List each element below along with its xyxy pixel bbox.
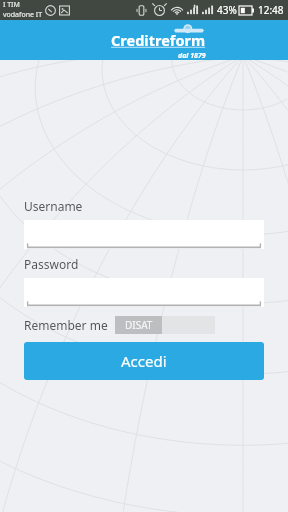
staticText: 12:48 [258,3,284,17]
staticText: Password [24,256,79,272]
staticText: I TIM [3,0,20,10]
staticText: Accedi [121,351,167,371]
staticText: DISAT [125,318,153,332]
staticText: 43% [217,3,237,17]
staticText: Username [24,198,83,214]
button[interactable] [24,220,264,249]
staticText: vodafone IT [3,10,43,20]
staticText: Creditreform [111,30,206,50]
button[interactable]: DISAT [115,316,215,334]
staticText: dal 1879 [178,51,206,61]
button[interactable] [24,278,264,307]
button[interactable]: Accedi [24,342,264,380]
staticText: Remember me [24,317,108,333]
